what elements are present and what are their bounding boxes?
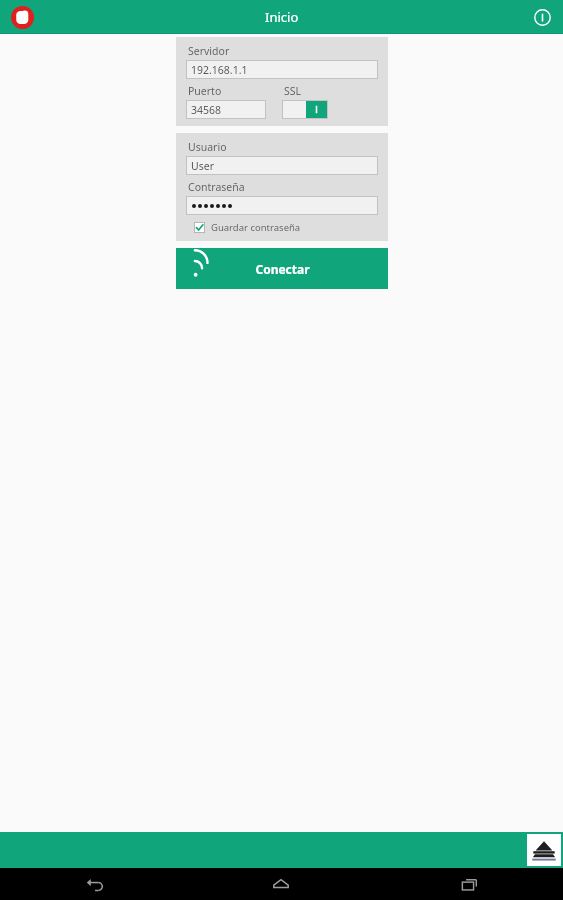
staticText: 192.168.1.1: [191, 63, 248, 77]
button[interactable]: Home: [187, 868, 375, 900]
button[interactable]: Info: [529, 4, 555, 30]
button[interactable]: Back: [0, 868, 187, 900]
button[interactable]: 192.168.1.1: [186, 60, 378, 79]
button[interactable]: Conectar: [176, 248, 388, 289]
staticText: Puerto: [188, 84, 222, 98]
button[interactable]: SSL toggle: [282, 100, 328, 119]
button[interactable]: Contraseña: [186, 196, 378, 215]
staticText: 34568: [191, 103, 222, 117]
button[interactable]: Menu: [8, 3, 36, 31]
staticText: Servidor: [188, 44, 230, 58]
button[interactable]: 34568: [186, 100, 266, 119]
staticText: Inicio: [265, 8, 299, 26]
staticText: User: [191, 159, 214, 173]
button[interactable]: Recents: [375, 868, 563, 900]
staticText: SSL: [284, 84, 302, 98]
button[interactable]: Logo: [527, 834, 561, 866]
staticText: Contraseña: [188, 180, 245, 194]
button[interactable]: Guardar contraseña: [186, 221, 378, 234]
staticText: Usuario: [188, 140, 227, 154]
button[interactable]: User: [186, 156, 378, 175]
staticText: Conectar: [255, 261, 310, 277]
staticText: Guardar contraseña: [211, 221, 301, 234]
